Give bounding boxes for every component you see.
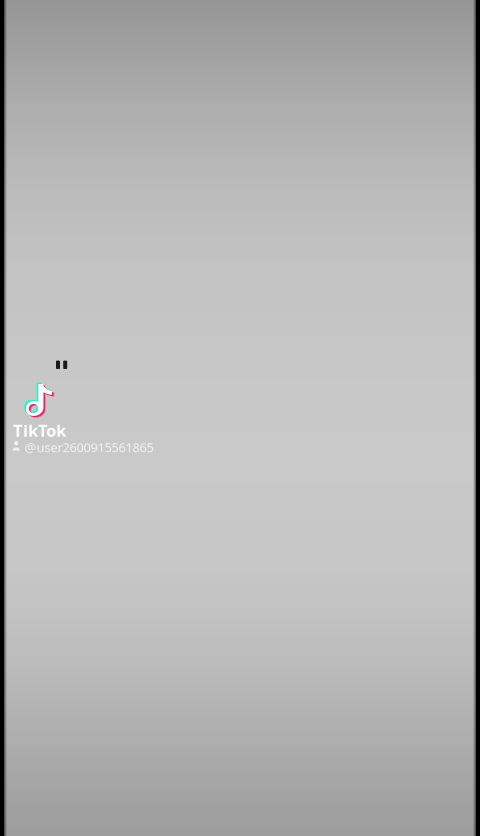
staticText: TikTok [13, 419, 66, 441]
staticText: @user2600915561865 [24, 438, 153, 456]
button[interactable]: TikTok [13, 383, 163, 455]
